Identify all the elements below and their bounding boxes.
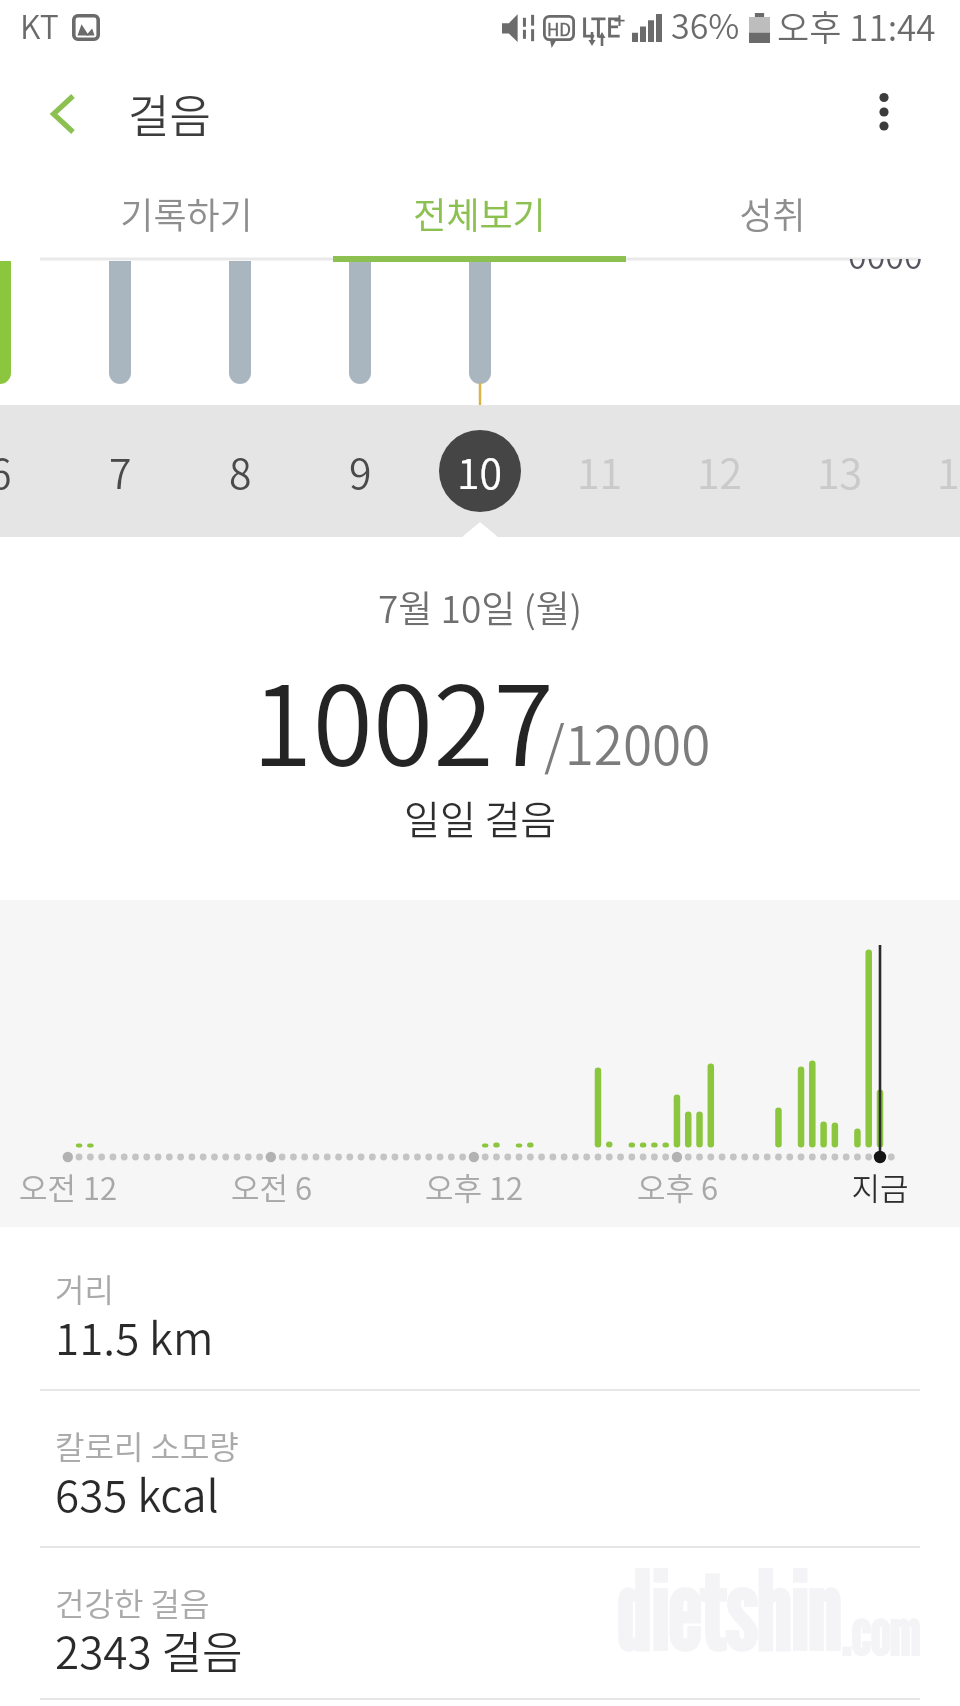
button[interactable]: 9	[300, 405, 420, 537]
staticText: 9	[349, 441, 372, 500]
button[interactable]: Back	[22, 78, 102, 158]
staticText: LTE	[581, 8, 621, 44]
button[interactable]: More options	[854, 82, 914, 154]
staticText: 전체보기	[413, 187, 546, 239]
staticText: KT	[20, 2, 59, 48]
button[interactable]: 성취	[626, 170, 919, 259]
staticText: dietshin	[618, 1545, 842, 1673]
staticText: 기록하기	[120, 187, 253, 239]
staticText: 거리	[55, 1265, 114, 1311]
button[interactable]: 7	[60, 405, 180, 537]
button[interactable]: 건강한 걸음	[0, 1541, 960, 1698]
staticText: 건강한 걸음	[55, 1579, 210, 1625]
staticText: 10027	[252, 638, 554, 797]
staticText: /12000	[544, 704, 711, 781]
staticText: +	[614, 5, 625, 34]
button[interactable]: 10	[420, 405, 540, 537]
staticText: 12	[697, 441, 743, 500]
button[interactable]: 기록하기	[40, 170, 333, 259]
staticText: 7월 10일 (월)	[378, 580, 583, 634]
staticText: 14	[937, 441, 960, 500]
staticText: 8	[229, 441, 252, 500]
staticText: 635 kcal	[55, 1461, 219, 1525]
button[interactable]: 칼로리 소모량	[0, 1384, 960, 1541]
staticText: 걸음	[128, 81, 211, 146]
staticText: 10	[457, 441, 503, 500]
button[interactable]: 14	[900, 405, 960, 537]
staticText: 오전 6	[231, 1164, 312, 1209]
staticText: 지금	[851, 1164, 909, 1209]
staticText: 오후 12	[425, 1164, 523, 1209]
button[interactable]: 8	[180, 405, 300, 537]
staticText: 0000	[848, 259, 923, 269]
staticText: 11	[577, 441, 623, 500]
staticText: 성취	[739, 187, 806, 239]
staticText: .com	[842, 1593, 921, 1670]
button[interactable]: 6	[0, 405, 60, 537]
staticText: 2343 걸음	[55, 1618, 243, 1682]
staticText: 36%	[671, 0, 740, 49]
button[interactable]: 전체보기	[333, 170, 626, 259]
button[interactable]: 거리	[0, 1227, 960, 1384]
staticText: 일일 걸음	[404, 789, 557, 845]
button[interactable]: 12	[660, 405, 780, 537]
button[interactable]: 13	[780, 405, 900, 537]
staticText: 6	[0, 441, 12, 500]
staticText: 13	[817, 441, 863, 500]
staticText: HD	[547, 16, 571, 41]
staticText: 7	[109, 441, 132, 500]
button[interactable]: 11	[540, 405, 660, 537]
staticText: 오후 11:44	[777, 0, 936, 51]
staticText: 오전 12	[19, 1164, 117, 1209]
staticText: 칼로리 소모량	[55, 1422, 239, 1468]
staticText: 오후 6	[637, 1164, 718, 1209]
staticText: 11.5 km	[55, 1304, 214, 1368]
